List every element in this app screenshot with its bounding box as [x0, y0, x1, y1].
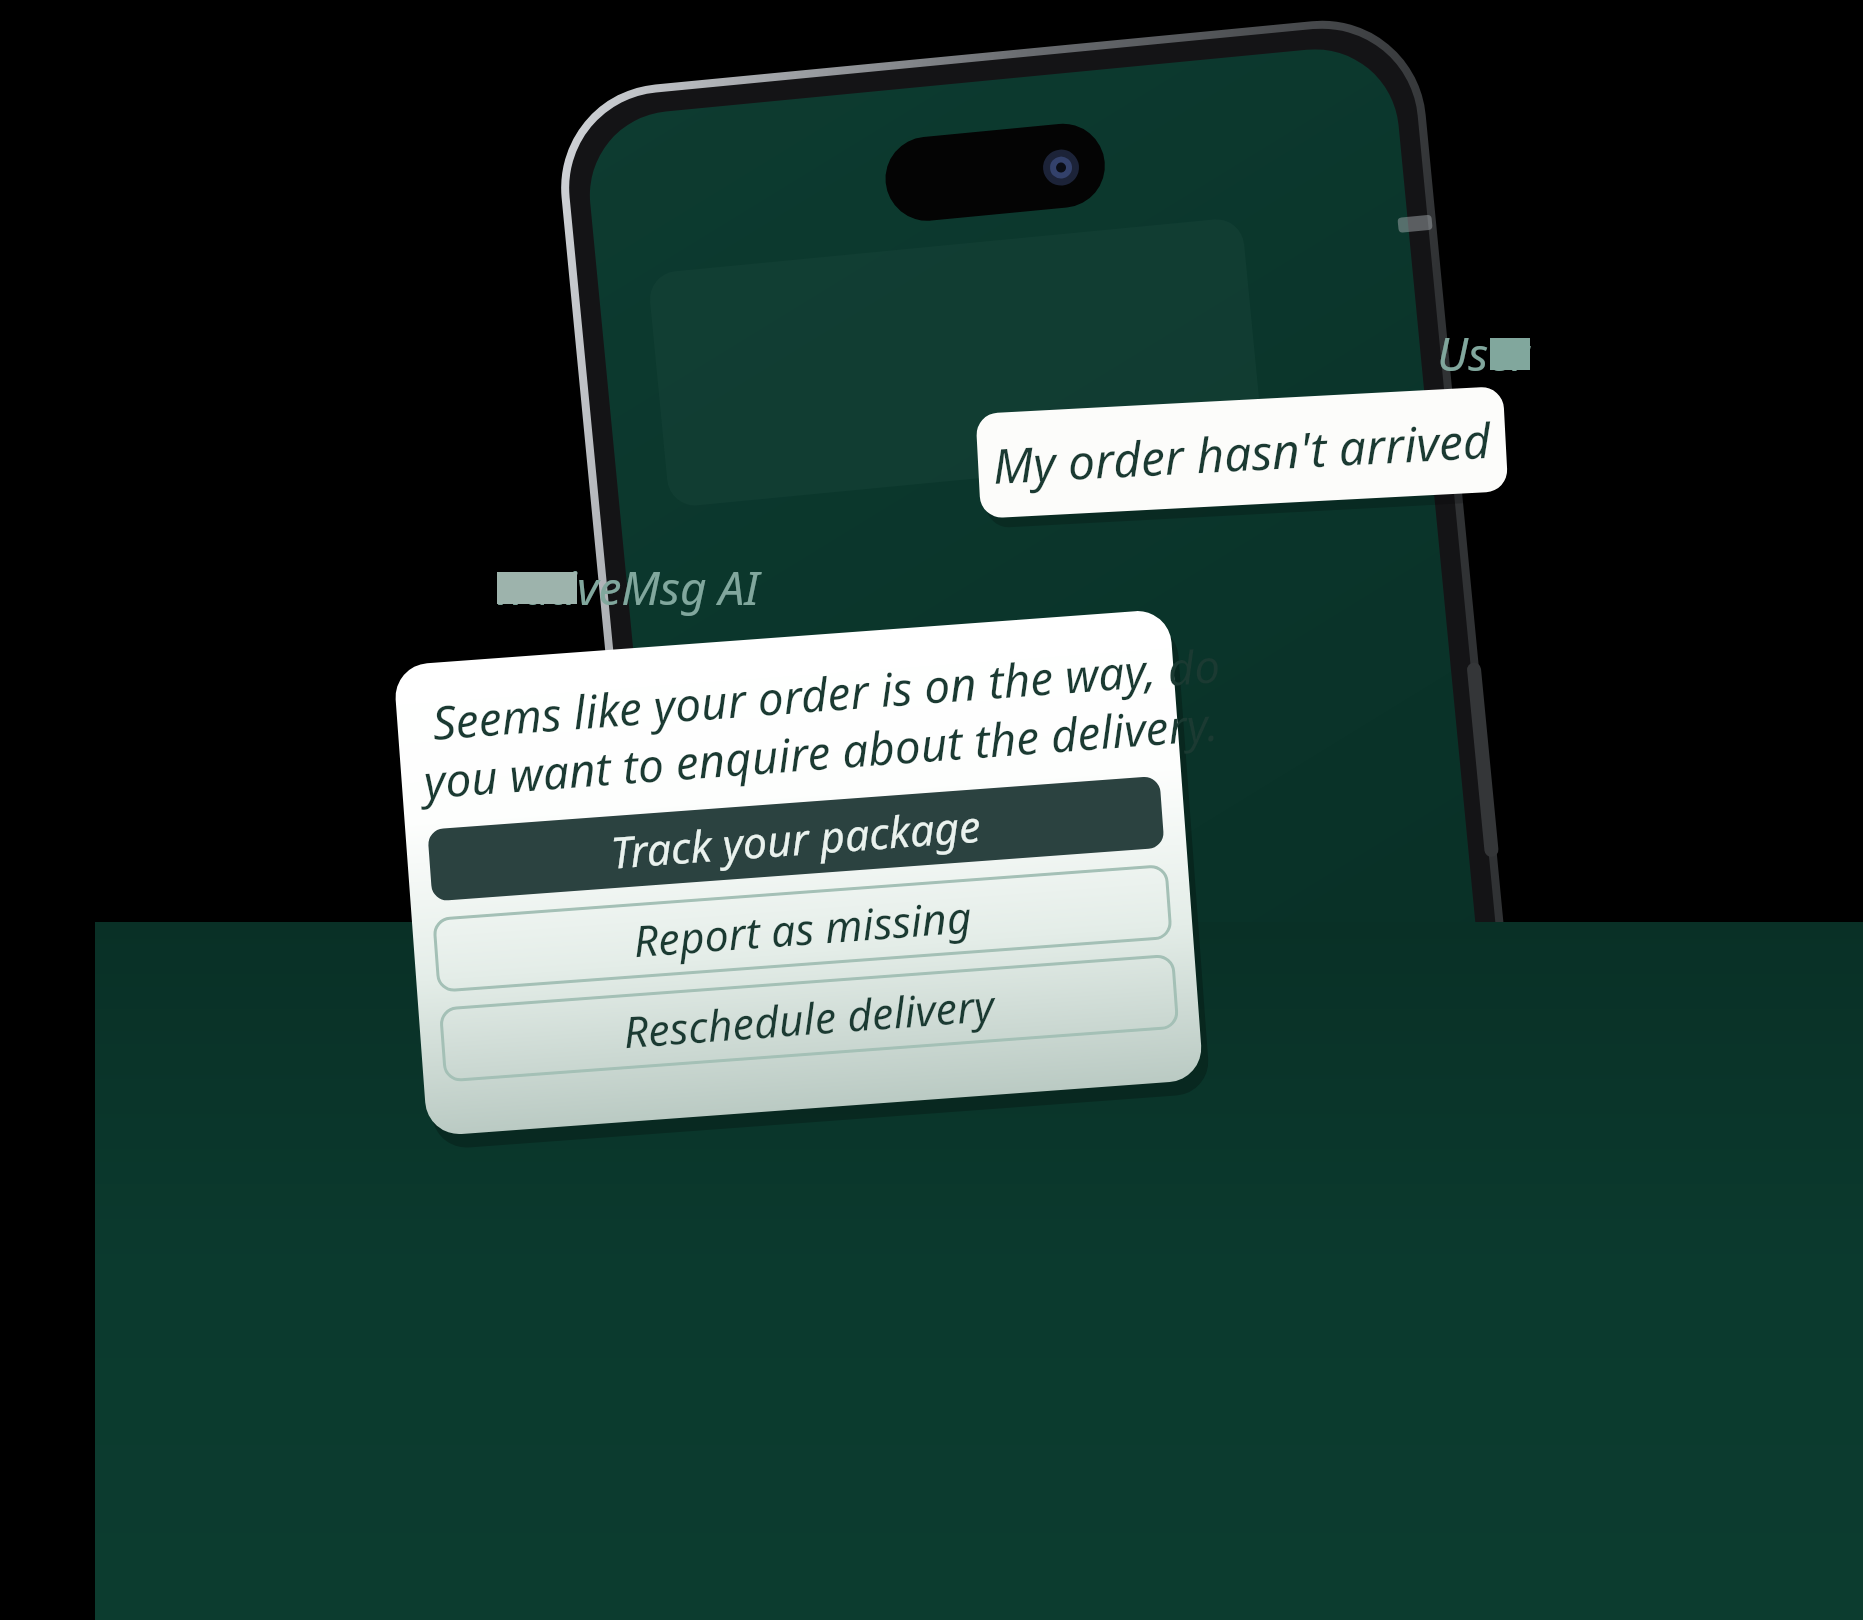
button[interactable]: Report as missing [395, 886, 1131, 961]
button[interactable]: Track your package [414, 797, 1150, 872]
button[interactable]: Reschedule delivery [373, 975, 1109, 1050]
